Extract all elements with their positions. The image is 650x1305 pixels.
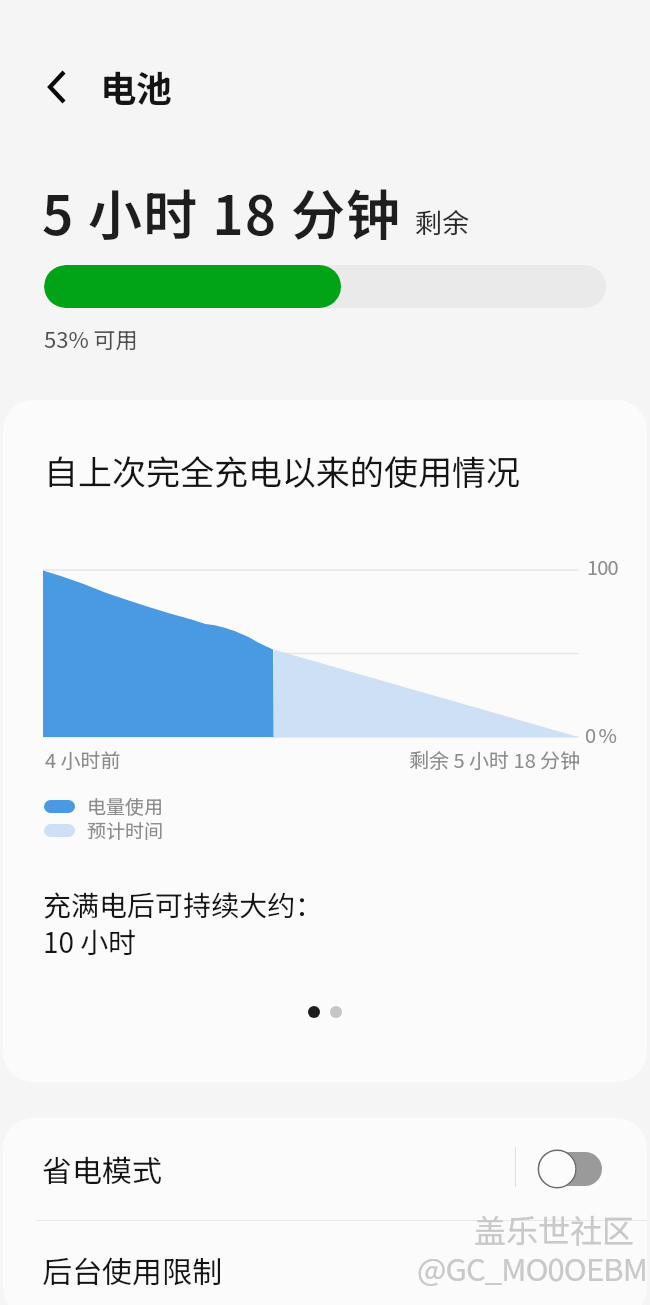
button[interactable]: Back	[18, 48, 96, 126]
staticText: 53% 可用	[44, 322, 138, 354]
staticText: 自上次完全充电以来的使用情况	[44, 446, 520, 495]
button[interactable]: 省电模式	[3, 1118, 647, 1219]
staticText: 盖乐世社区	[474, 1206, 635, 1252]
staticText: 预计时间	[87, 816, 164, 844]
staticText: 电池	[100, 60, 173, 112]
staticText: 后台使用限制	[42, 1248, 222, 1291]
staticText: @GC_MO0OEBM	[417, 1245, 648, 1290]
staticText: 10 小时	[43, 921, 137, 962]
staticText: 0 %	[585, 720, 616, 749]
staticText: 充满电后可持续大约：	[43, 884, 324, 925]
button[interactable]: 后台使用限制	[3, 1220, 647, 1305]
staticText: 100	[587, 552, 618, 581]
staticText: 5 小时 18 分钟	[42, 172, 402, 250]
button[interactable]: 自上次完全充电以来的使用情况	[3, 400, 647, 1082]
staticText: 4 小时前	[45, 745, 121, 774]
button[interactable]: 省电模式 开关	[533, 1145, 623, 1195]
staticText: 电量使用	[87, 792, 164, 820]
staticText: 剩余 5 小时 18 分钟	[409, 745, 581, 771]
staticText: 剩余	[415, 202, 469, 241]
staticText: 省电模式	[42, 1147, 162, 1190]
